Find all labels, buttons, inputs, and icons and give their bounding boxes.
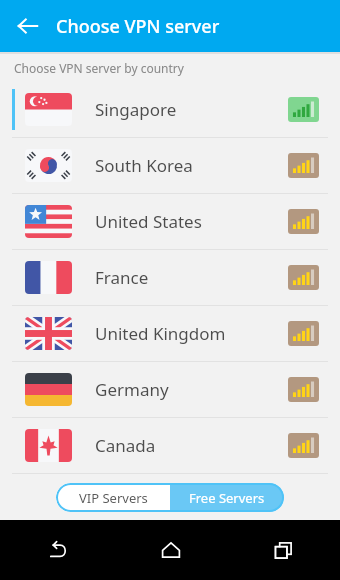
staticText: France <box>95 266 149 289</box>
button[interactable]: France <box>0 250 340 305</box>
staticText: Choose VPN server <box>56 14 220 39</box>
button[interactable]: Canada <box>0 418 340 473</box>
button[interactable]: Recents <box>227 520 340 580</box>
staticText: Germany <box>95 378 169 401</box>
staticText: Singapore <box>95 98 177 121</box>
button[interactable]: Free Servers <box>170 483 284 512</box>
button[interactable]: VIP Servers <box>56 483 170 512</box>
staticText: South Korea <box>95 154 193 177</box>
staticText: Canada <box>95 434 156 457</box>
button[interactable]: Back <box>0 520 114 580</box>
staticText: Free Servers <box>189 489 265 507</box>
button[interactable]: Singapore <box>0 82 340 137</box>
button[interactable]: Germany <box>0 362 340 417</box>
staticText: VIP Servers <box>79 489 148 507</box>
button[interactable]: South Korea <box>0 138 340 193</box>
button[interactable]: Home <box>114 520 227 580</box>
staticText: United Kingdom <box>95 322 226 345</box>
button[interactable]: United States <box>0 194 340 249</box>
button[interactable]: Back <box>8 6 48 46</box>
staticText: United States <box>95 210 202 233</box>
button[interactable]: United Kingdom <box>0 306 340 361</box>
staticText: Choose VPN server by country <box>14 60 184 76</box>
